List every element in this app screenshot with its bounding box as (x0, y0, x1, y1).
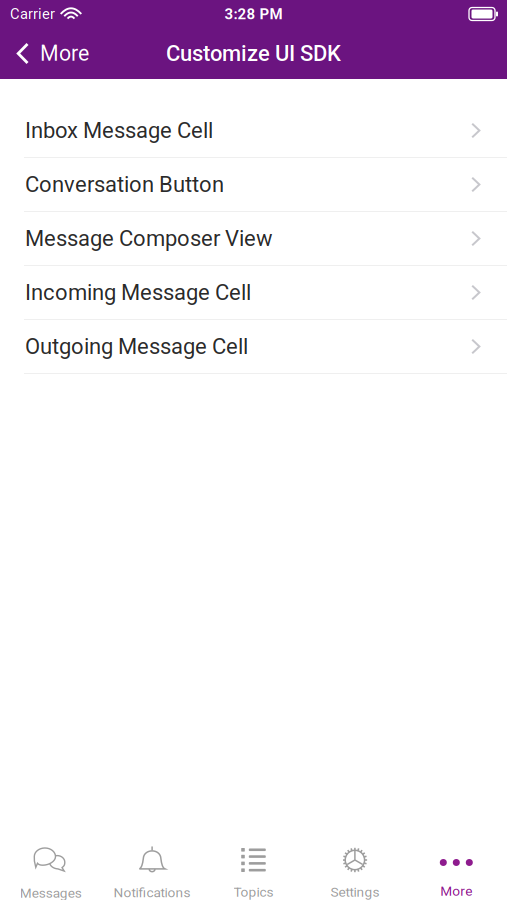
staticText: More (40, 41, 89, 66)
staticText: Settings (330, 884, 379, 900)
staticText: Carrier (10, 5, 55, 23)
button[interactable]: Incoming Message Cell (0, 266, 507, 320)
staticText: Topics (233, 884, 273, 900)
button[interactable]: Inbox Message Cell (0, 104, 507, 158)
staticText: Messages (20, 885, 82, 900)
button[interactable]: Settings (304, 834, 406, 900)
button[interactable]: Notifications (101, 834, 203, 900)
staticText: Message Composer View (25, 226, 273, 251)
button[interactable]: Messages (0, 834, 101, 900)
button[interactable]: More (0, 28, 101, 78)
staticText: More (440, 883, 472, 899)
button[interactable]: Outgoing Message Cell (0, 320, 507, 374)
staticText: Incoming Message Cell (25, 280, 251, 305)
button[interactable]: More (406, 834, 507, 900)
staticText: Notifications (114, 884, 191, 900)
staticText: Customize UI SDK (166, 41, 341, 66)
button[interactable]: Message Composer View (0, 212, 507, 266)
button[interactable]: Topics (203, 834, 304, 900)
staticText: 3:28 PM (224, 5, 282, 23)
button[interactable]: Conversation Button (0, 158, 507, 212)
staticText: Outgoing Message Cell (25, 334, 248, 359)
staticText: Conversation Button (25, 172, 224, 197)
staticText: Inbox Message Cell (25, 118, 213, 143)
